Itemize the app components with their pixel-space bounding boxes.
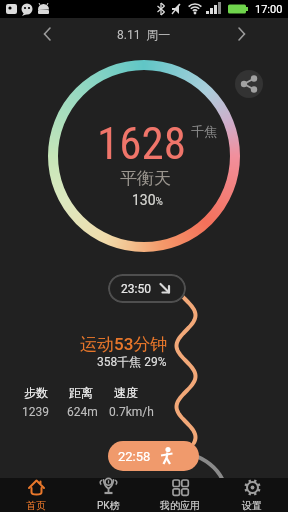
button[interactable] (235, 70, 263, 98)
button[interactable]: 首页 (0, 478, 72, 512)
staticText: 23:50 (121, 282, 151, 296)
staticText: 1239 (22, 405, 49, 419)
staticText: 我的应用 (160, 499, 200, 512)
staticText: 千焦 (191, 123, 217, 139)
staticText: PK榜 (97, 499, 120, 512)
button[interactable]: 23:50 (108, 274, 186, 303)
staticText: 速度 (114, 385, 138, 400)
staticText: 距离 (69, 385, 93, 400)
staticText: 22:58 (118, 449, 151, 464)
button[interactable] (230, 20, 252, 48)
staticText: 0.7km/h (109, 405, 154, 419)
staticText: 平衡天 (120, 168, 171, 186)
staticText: 步数 (24, 385, 48, 400)
button[interactable]: 22:58 (108, 441, 199, 471)
staticText: 358千焦 29% (97, 354, 167, 369)
staticText: 运动53分钟 (80, 334, 168, 353)
button[interactable]: PK榜 (72, 478, 144, 512)
staticText: 设置 (242, 499, 262, 512)
button[interactable] (36, 20, 58, 48)
staticText: 624m (67, 405, 98, 419)
staticText: 1628 (97, 117, 186, 167)
button[interactable]: 我的应用 (144, 478, 216, 512)
button[interactable]: 8.11 周一 (117, 18, 171, 50)
staticText: 8.11 周一 (117, 27, 171, 42)
staticText: 首页 (26, 499, 46, 512)
staticText: 17:00 (255, 3, 283, 16)
staticText: 130% (132, 192, 163, 208)
button[interactable]: 设置 (216, 478, 288, 512)
